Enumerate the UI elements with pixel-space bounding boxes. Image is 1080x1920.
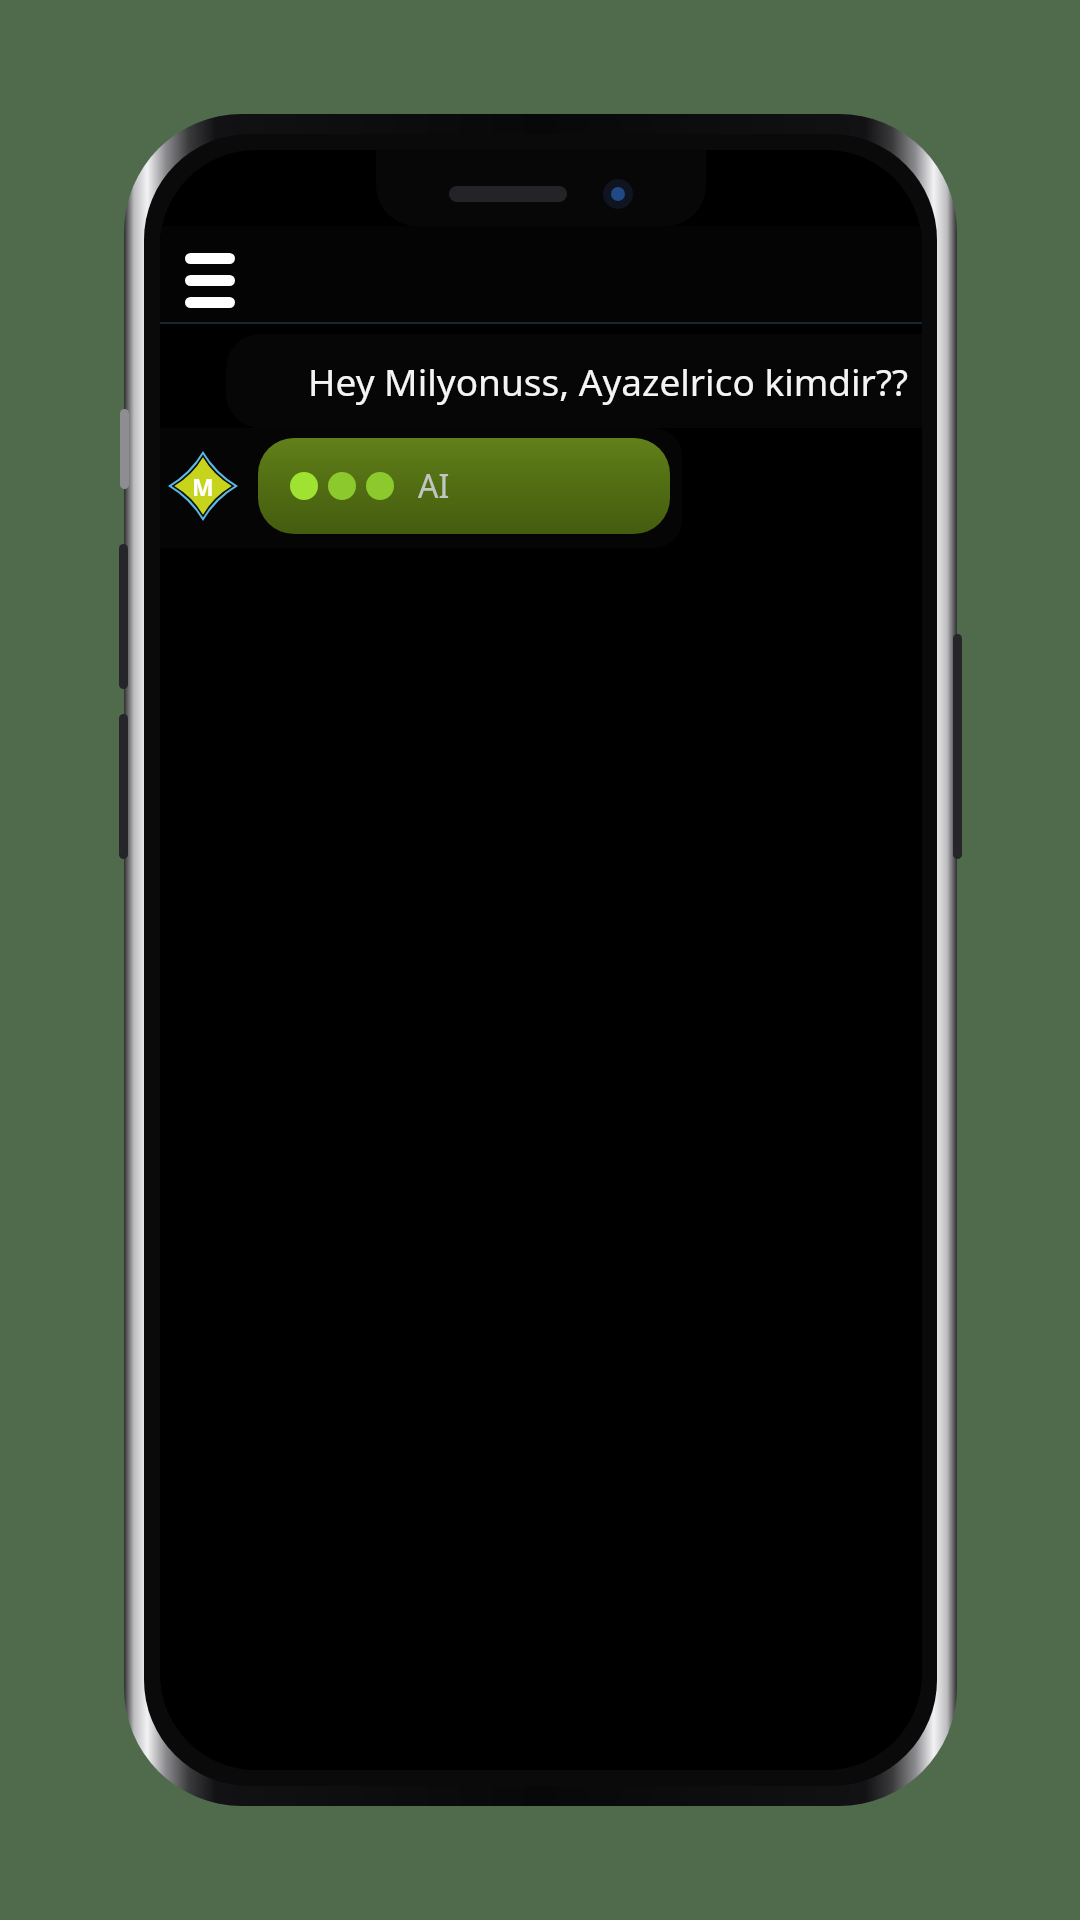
button[interactable]: Menu bbox=[174, 244, 246, 316]
staticText: Hey Milyonuss, Ayazelrico kimdir?? bbox=[308, 356, 908, 406]
button[interactable]: Hey Milyonuss, Ayazelrico kimdir?? bbox=[226, 334, 922, 428]
staticText: AI düşünüyor... bbox=[418, 464, 638, 508]
button[interactable]: AI düşünüyor... bbox=[258, 438, 670, 534]
staticText: M bbox=[192, 471, 214, 502]
